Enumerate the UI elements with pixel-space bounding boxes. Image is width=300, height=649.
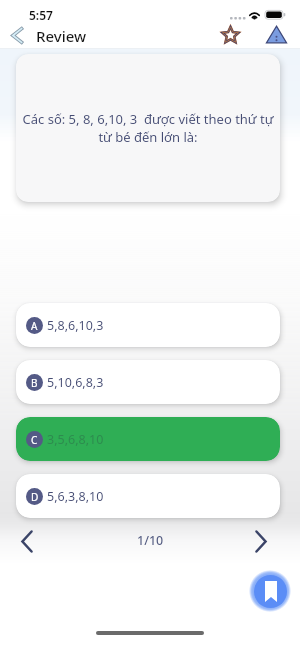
staticText: Các số: 5, 8, 6,10, 3 được viết theo thứ… [19,110,277,146]
button[interactable]: Report [265,23,287,45]
staticText: A [31,319,38,333]
button[interactable]: Favorite [222,26,239,43]
staticText: 5,10,6,8,3 [47,374,104,391]
button[interactable]: Back [3,21,31,49]
staticText: 1/10 [137,532,164,549]
button[interactable]: Previous [12,526,42,556]
button[interactable]: C [16,417,280,461]
staticText: 5:57 [29,7,53,23]
staticText: 3,5,6,8,10 [47,431,104,448]
button[interactable]: B [16,360,280,404]
staticText: Review [36,26,87,46]
button[interactable]: D [16,474,280,518]
button[interactable]: A [16,303,280,347]
button[interactable]: Bookmark [246,567,294,615]
button[interactable]: Next [246,526,276,556]
staticText: C [31,433,38,447]
staticText: 5,8,6,10,3 [47,317,104,334]
staticText: D [31,490,39,504]
staticText: 5,6,3,8,10 [47,488,104,505]
staticText: B [31,376,38,390]
